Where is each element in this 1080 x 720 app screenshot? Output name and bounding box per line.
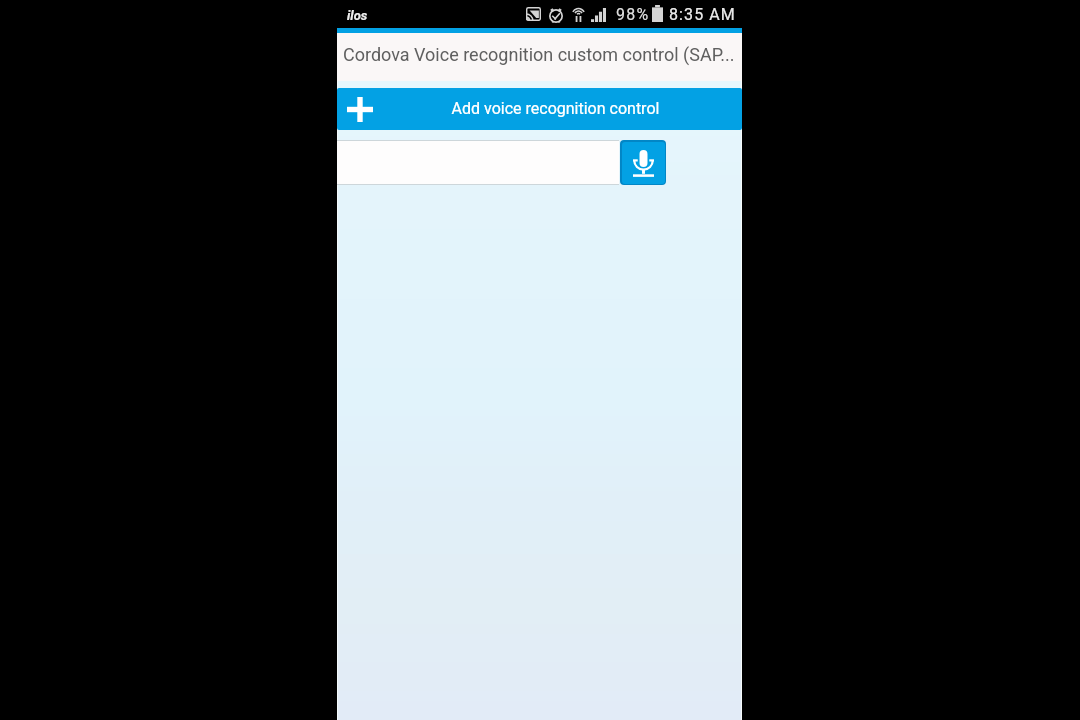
button[interactable]: Start voice recognition bbox=[620, 140, 666, 185]
button[interactable]: Recognised speech text field bbox=[337, 140, 619, 185]
staticText: 98% bbox=[616, 5, 650, 24]
button[interactable]: Add voice recognition control bbox=[337, 88, 742, 130]
staticText: 8:35 AM bbox=[669, 5, 736, 24]
staticText: Add voice recognition control bbox=[392, 99, 719, 118]
staticText: Cordova Voice recognition custom control… bbox=[343, 44, 742, 65]
staticText: ilos bbox=[347, 8, 368, 23]
